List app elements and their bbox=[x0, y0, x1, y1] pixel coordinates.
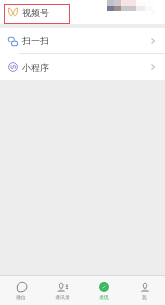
button[interactable]: 我 bbox=[124, 276, 165, 305]
button[interactable]: 微信 bbox=[0, 276, 42, 305]
button[interactable]: 通讯录 bbox=[42, 276, 83, 305]
staticText: 小程序 bbox=[22, 62, 49, 73]
button[interactable]: 发现 bbox=[83, 276, 124, 305]
staticText: 发现 bbox=[99, 294, 109, 300]
button[interactable]: 扫一扫 bbox=[0, 28, 165, 53]
staticText: 我 bbox=[142, 294, 147, 300]
staticText: 通讯录 bbox=[55, 294, 70, 300]
staticText: 微信 bbox=[16, 294, 26, 300]
button[interactable]: 小程序 bbox=[0, 54, 165, 80]
staticText: 扫一扫 bbox=[22, 35, 49, 46]
staticText: 视频号 bbox=[22, 7, 49, 18]
button[interactable]: 视频号 bbox=[0, 0, 165, 24]
